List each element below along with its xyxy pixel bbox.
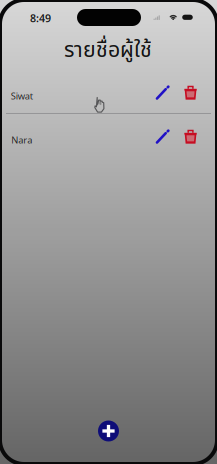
button[interactable]: Delete Nara bbox=[179, 122, 203, 150]
staticText: 8:49 bbox=[30, 11, 51, 25]
staticText: รายชื่อผู้ใช้ bbox=[64, 34, 152, 67]
button[interactable]: Add user bbox=[98, 420, 119, 441]
button[interactable]: Delete Siwat bbox=[179, 78, 203, 106]
button[interactable]: Edit Nara bbox=[150, 122, 174, 150]
button[interactable]: Edit Siwat bbox=[150, 78, 174, 106]
staticText: Nara bbox=[11, 134, 32, 146]
staticText: Siwat bbox=[11, 90, 33, 102]
